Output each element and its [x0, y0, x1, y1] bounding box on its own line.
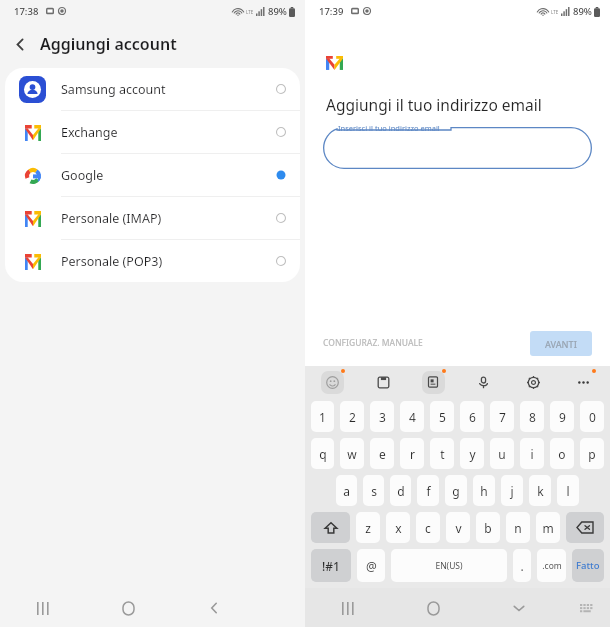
button[interactable]: Home	[113, 593, 143, 623]
button[interactable]: w	[340, 438, 364, 469]
button[interactable]: 8	[520, 401, 544, 432]
staticText: Personale (IMAP)	[61, 210, 162, 227]
button[interactable]: i	[520, 438, 544, 469]
button[interactable]: Samsung account	[5, 68, 300, 110]
staticText: z	[365, 520, 371, 536]
staticText: LTE	[551, 9, 559, 15]
button[interactable]: Recents	[28, 593, 58, 623]
button[interactable]: Home	[418, 593, 448, 623]
staticText: e	[379, 446, 386, 462]
button[interactable]: Stickers	[420, 369, 446, 395]
button[interactable]: s	[363, 475, 384, 506]
button[interactable]: j	[501, 475, 523, 506]
button[interactable]: 4	[400, 401, 424, 432]
staticText: x	[395, 520, 402, 536]
staticText: 0	[589, 409, 596, 425]
button[interactable]: e	[370, 438, 394, 469]
staticText: v	[455, 520, 462, 536]
button[interactable]: Google	[5, 154, 300, 196]
button[interactable]: Hide keyboard	[504, 593, 534, 623]
staticText: s	[371, 483, 377, 499]
staticText: p	[588, 446, 596, 462]
button[interactable]: d	[390, 475, 411, 506]
staticText: a	[343, 483, 350, 499]
button[interactable]: Clipboard	[370, 369, 396, 395]
button[interactable]: Emoji	[319, 369, 345, 395]
button[interactable]: 6	[460, 401, 484, 432]
staticText: LTE	[246, 9, 254, 15]
button[interactable]: .	[513, 549, 531, 582]
staticText: 89%	[268, 5, 287, 18]
button[interactable]: n	[506, 512, 530, 543]
staticText: 1	[319, 409, 326, 425]
staticText: Samsung account	[61, 81, 166, 98]
button[interactable]: Personale (IMAP)	[5, 197, 300, 239]
staticText: 2	[349, 409, 356, 425]
button[interactable]: Backspace	[566, 512, 604, 543]
staticText: b	[484, 520, 492, 536]
staticText: CONFIGURAZ. MANUALE	[323, 337, 423, 349]
button[interactable]: Fatto	[572, 549, 604, 582]
button[interactable]: z	[356, 512, 380, 543]
staticText: AVANTI	[545, 338, 577, 350]
button[interactable]: Symbols	[311, 549, 351, 582]
button[interactable]: h	[473, 475, 495, 506]
button[interactable]: r	[400, 438, 424, 469]
button[interactable]: 2	[340, 401, 364, 432]
button[interactable]: @	[357, 549, 385, 582]
button[interactable]: p	[580, 438, 604, 469]
staticText: Exchange	[61, 124, 118, 141]
button[interactable]: Switch keyboard	[573, 595, 599, 621]
button[interactable]: AVANTI	[530, 331, 592, 356]
button[interactable]: Shift	[311, 512, 350, 543]
staticText: 6	[469, 409, 476, 425]
staticText: 89%	[573, 5, 592, 18]
staticText: k	[537, 483, 544, 499]
staticText: u	[498, 446, 506, 462]
button[interactable]: 0	[580, 401, 604, 432]
button[interactable]: v	[446, 512, 470, 543]
button[interactable]: Back	[0, 24, 40, 64]
button[interactable]: u	[490, 438, 514, 469]
staticText: Inserisci il tuo indirizzo email	[338, 123, 440, 133]
staticText: Aggiungi il tuo indirizzo email	[326, 94, 542, 115]
button[interactable]: .com	[537, 549, 566, 582]
staticText: Fatto	[576, 559, 600, 572]
button[interactable]: x	[386, 512, 410, 543]
button[interactable]: EN(US)	[391, 549, 507, 582]
staticText: i	[530, 446, 534, 462]
button[interactable]: 1	[311, 401, 334, 432]
button[interactable]: Settings	[520, 369, 546, 395]
button[interactable]: 5	[430, 401, 454, 432]
button[interactable]: CONFIGURAZ. MANUALE	[323, 331, 423, 355]
button[interactable]: Back	[199, 593, 229, 623]
staticText: f	[426, 483, 431, 499]
button[interactable]: 7	[490, 401, 514, 432]
button[interactable]: k	[529, 475, 551, 506]
staticText: 4	[409, 409, 416, 425]
button[interactable]: o	[550, 438, 574, 469]
button[interactable]: l	[557, 475, 579, 506]
button[interactable]: a	[336, 475, 357, 506]
staticText: @	[366, 558, 377, 574]
button[interactable]: m	[536, 512, 560, 543]
button[interactable]: c	[416, 512, 440, 543]
staticText: 3	[379, 409, 386, 425]
staticText: j	[510, 483, 514, 499]
staticText: h	[480, 483, 488, 499]
button[interactable]: g	[445, 475, 467, 506]
button[interactable]: t	[430, 438, 454, 469]
button[interactable]: b	[476, 512, 500, 543]
button[interactable]: Voice input	[470, 369, 496, 395]
button[interactable]: f	[417, 475, 439, 506]
staticText: m	[542, 520, 554, 536]
staticText: 9	[559, 409, 566, 425]
button[interactable]: Personale (POP3)	[5, 240, 300, 282]
button[interactable]: More options	[570, 369, 596, 395]
button[interactable]: Exchange	[5, 111, 300, 153]
button[interactable]: q	[311, 438, 334, 469]
button[interactable]: Recents	[333, 593, 363, 623]
button[interactable]: y	[460, 438, 484, 469]
button[interactable]: 3	[370, 401, 394, 432]
button[interactable]: 9	[550, 401, 574, 432]
